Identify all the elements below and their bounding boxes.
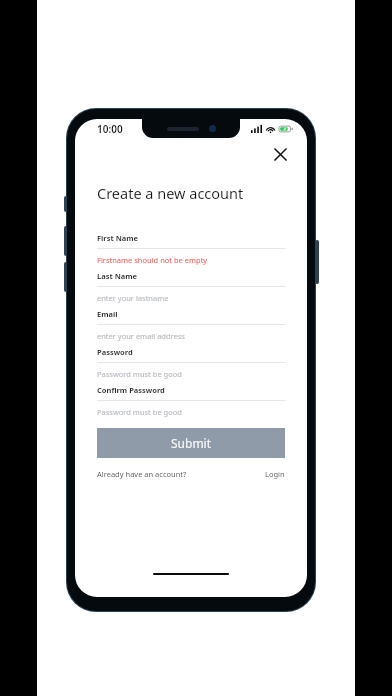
staticText: enter your lastname <box>97 293 169 303</box>
button[interactable]: Submit <box>97 428 285 458</box>
staticText: Password must be good <box>97 369 182 379</box>
button[interactable]: Firstname should not be empty <box>97 253 285 266</box>
staticText: First Name <box>97 233 139 243</box>
staticText: Password <box>97 347 133 357</box>
staticText: Email <box>97 309 118 319</box>
button[interactable]: Password must be good <box>97 405 285 418</box>
button[interactable]: Password must be good <box>97 367 285 380</box>
staticText: Password must be good <box>97 407 182 417</box>
staticText: enter your email address <box>97 331 185 341</box>
staticText: Login <box>265 469 285 479</box>
button[interactable]: Login <box>265 469 285 479</box>
button[interactable]: Already have an account? <box>97 469 187 479</box>
button[interactable]: enter your email address <box>97 329 285 342</box>
button[interactable]: Close <box>269 143 291 165</box>
staticText: Firstname should not be empty <box>97 255 208 265</box>
staticText: Submit <box>171 435 212 451</box>
button[interactable]: enter your lastname <box>97 291 285 304</box>
staticText: 10:00 <box>97 122 123 136</box>
staticText: Already have an account? <box>97 469 187 479</box>
staticText: Confirm Password <box>97 385 165 395</box>
staticText: Create a new account <box>97 183 244 203</box>
staticText: Last Name <box>97 271 138 281</box>
